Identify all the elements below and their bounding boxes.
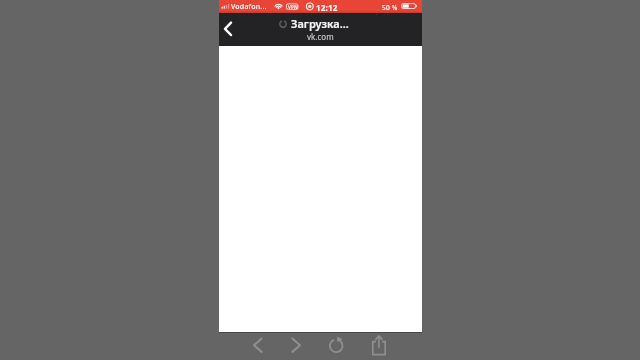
button[interactable] <box>286 334 306 358</box>
staticText: vk.com <box>307 31 334 40</box>
staticText: VPN <box>288 4 298 10</box>
staticText: Загрузка... <box>291 16 349 31</box>
button[interactable] <box>219 14 241 42</box>
button[interactable] <box>326 334 346 358</box>
button[interactable] <box>219 13 422 46</box>
button[interactable] <box>368 334 390 358</box>
staticText: 50 % <box>382 3 398 12</box>
button[interactable] <box>248 334 268 358</box>
staticText: 12:12 <box>316 2 338 13</box>
staticText: Vodafon... <box>231 2 267 12</box>
